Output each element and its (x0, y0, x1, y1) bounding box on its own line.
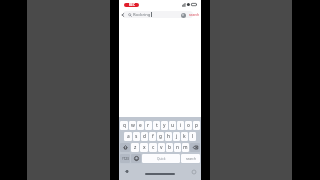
button[interactable]: c (149, 143, 157, 152)
staticText: j (176, 133, 178, 140)
staticText: r (147, 122, 150, 129)
button[interactable]: x (140, 143, 148, 152)
button[interactable]: u (169, 121, 176, 130)
staticText: h (167, 133, 171, 140)
button[interactable]: v (158, 143, 165, 152)
button[interactable]: Space (142, 154, 180, 163)
button[interactable]: Back (119, 9, 127, 20)
staticText: k (183, 133, 186, 140)
staticText: ?123 (122, 157, 129, 161)
button[interactable]: g (157, 132, 164, 141)
button[interactable]: h (165, 132, 172, 141)
staticText: e (139, 122, 142, 129)
staticText: y (163, 122, 166, 129)
staticText: s (135, 133, 138, 140)
button[interactable]: j (173, 132, 180, 141)
staticText: d (143, 133, 146, 140)
staticText: w (131, 122, 135, 129)
button[interactable]: Recent apps (190, 168, 197, 175)
staticText: u (171, 122, 175, 129)
button[interactable]: r (145, 121, 152, 130)
staticText: z (134, 144, 137, 151)
button[interactable]: a (124, 132, 132, 141)
staticText: x (143, 144, 146, 151)
button[interactable]: Voice search (179, 11, 187, 19)
staticText: search (189, 13, 200, 17)
button[interactable]: o (185, 121, 192, 130)
button[interactable]: y (161, 121, 168, 130)
button[interactable]: search (181, 154, 200, 163)
staticText: search (186, 157, 196, 161)
staticText: f (152, 133, 154, 140)
staticText: t (156, 122, 158, 129)
button[interactable]: m (182, 143, 189, 152)
staticText: l (192, 133, 194, 140)
staticText: a (127, 133, 130, 140)
button[interactable]: i (177, 121, 184, 130)
button[interactable]: Shift (120, 143, 130, 152)
staticText: v (160, 144, 163, 151)
staticText: REC (129, 3, 135, 7)
button[interactable]: Backspace (190, 143, 200, 152)
button[interactable]: Rockring (133, 12, 151, 18)
button[interactable]: s (133, 132, 140, 141)
staticText: o (187, 122, 190, 129)
staticText: m (183, 144, 188, 151)
button[interactable]: q (120, 121, 128, 130)
staticText: c (152, 144, 155, 151)
button[interactable]: b (166, 143, 173, 152)
button[interactable]: p (193, 121, 200, 130)
button[interactable]: d (141, 132, 148, 141)
staticText: i (180, 122, 182, 129)
button[interactable]: Recording (124, 3, 139, 7)
button[interactable]: n (174, 143, 181, 152)
staticText: b (168, 144, 171, 151)
button[interactable]: f (149, 132, 156, 141)
staticText: q (123, 122, 126, 129)
button[interactable]: Back (123, 168, 130, 175)
button[interactable]: k (181, 132, 188, 141)
staticText: n (176, 144, 180, 151)
staticText: p (195, 122, 198, 129)
button[interactable]: Home (145, 173, 175, 175)
staticText: Quick (157, 157, 166, 161)
button[interactable]: t (153, 121, 160, 130)
button[interactable]: e (137, 121, 144, 130)
button[interactable]: z (131, 143, 139, 152)
button[interactable]: l (189, 132, 196, 141)
button[interactable]: Symbols (120, 154, 130, 163)
staticText: g (159, 133, 162, 140)
button[interactable]: Emoji (131, 154, 141, 163)
button[interactable]: w (129, 121, 136, 130)
button[interactable]: search (188, 9, 200, 20)
